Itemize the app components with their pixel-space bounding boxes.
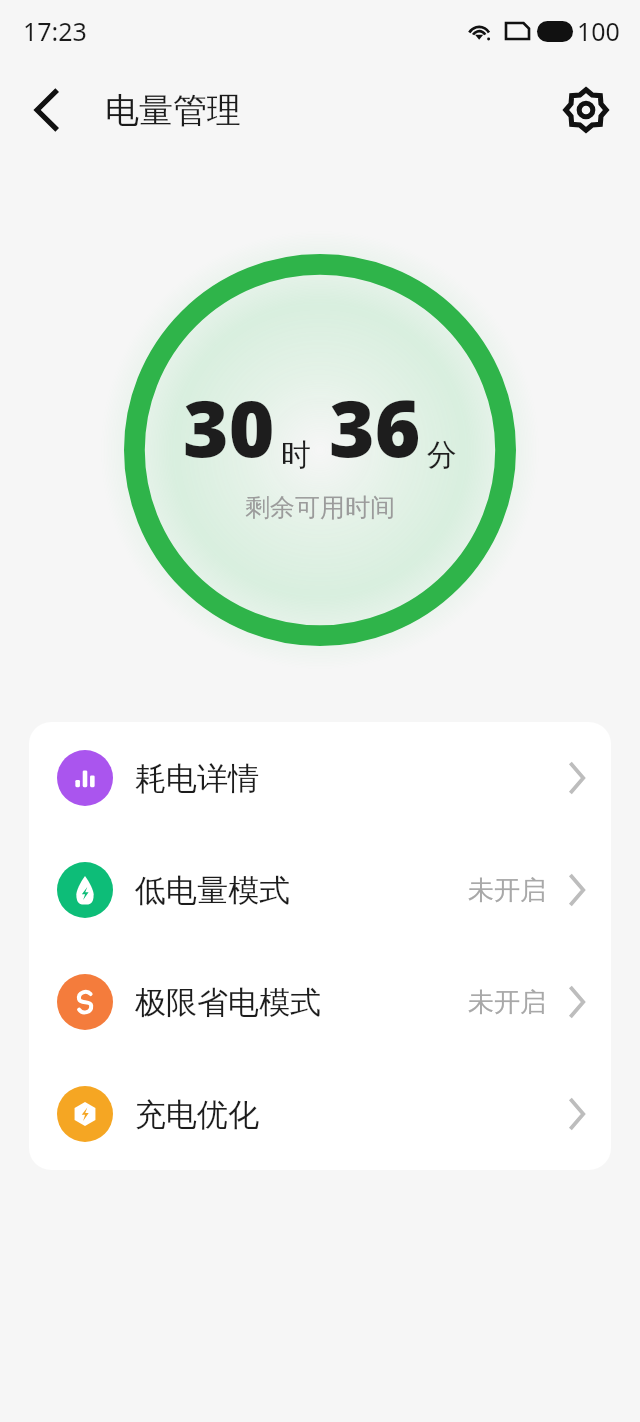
staticText: 17:23 (23, 14, 87, 48)
button[interactable]: Settings (560, 84, 612, 136)
staticText: 36 (329, 374, 421, 480)
staticText: 未开启 (468, 874, 546, 907)
button[interactable]: 极限省电模式 (29, 946, 611, 1058)
staticText: 100 (577, 14, 620, 48)
staticText: 极限省电模式 (135, 983, 321, 1022)
button[interactable]: 充电优化 (29, 1058, 611, 1170)
staticText: 耗电详情 (135, 759, 259, 798)
staticText: 充电优化 (135, 1095, 259, 1134)
staticText: 低电量模式 (135, 871, 290, 910)
staticText: 未开启 (468, 986, 546, 1019)
button[interactable]: 低电量模式 (29, 834, 611, 946)
staticText: 30 (183, 374, 275, 480)
staticText: 时 (281, 436, 311, 474)
staticText: 剩余可用时间 (245, 492, 395, 523)
staticText: 分 (427, 436, 457, 474)
button[interactable]: Back (16, 79, 78, 141)
staticText: 电量管理 (105, 89, 241, 132)
button[interactable]: 耗电详情 (29, 722, 611, 834)
